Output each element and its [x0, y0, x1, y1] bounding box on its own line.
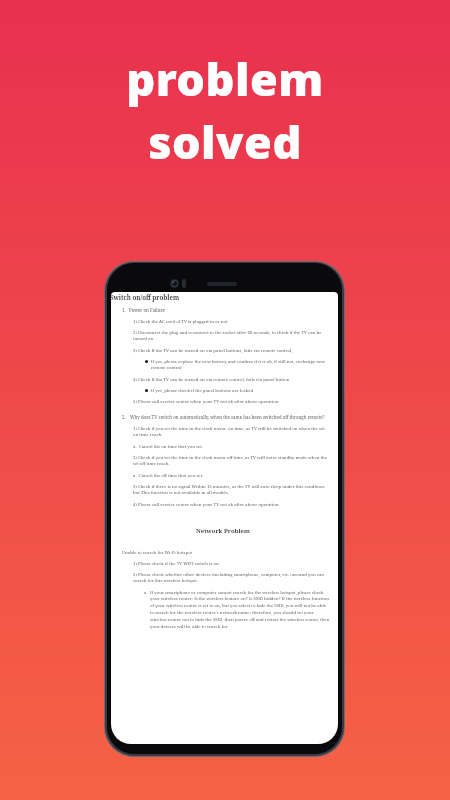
staticText: Unable to search for Wi-Fi hotspot: [122, 549, 193, 555]
staticText: If yes, please check if the panel button…: [151, 387, 254, 393]
staticText: 4) Check If the TV can be turned on via …: [133, 376, 290, 382]
staticText: If yes, please replace the new battery a…: [151, 358, 329, 371]
staticText: Cancel the on time that you set.: [139, 443, 203, 449]
staticText: a.: [133, 472, 139, 478]
staticText: 2) Check if you set the time in the cloc…: [133, 454, 331, 467]
staticText: Network Problem: [111, 527, 335, 535]
staticText: a.: [133, 443, 139, 449]
staticText: 1.: [122, 307, 129, 313]
staticText: Switch on/off problem: [111, 293, 180, 301]
staticText: Why does TV switch on automatically, whe…: [130, 414, 325, 420]
staticText: 1) Check the AC cord of TV is plugged in…: [133, 318, 228, 324]
staticText: Power on Failure: [129, 307, 165, 313]
staticText: 3) Check If the TV can be turned on via …: [133, 347, 293, 353]
staticText: problem: [126, 48, 324, 109]
staticText: 2) Please check whether other devices (i…: [133, 571, 331, 584]
staticText: 4) Please call service center when your …: [133, 501, 280, 507]
staticText: 2) Disconnect the plug and reconnect to …: [133, 329, 331, 342]
staticText: 5) Please call service center when your …: [133, 398, 280, 404]
staticText: solved: [148, 111, 302, 172]
staticText: If your smartphone or computer cannot se…: [150, 589, 331, 630]
staticText: 1) Check if you set the time in the cloc…: [133, 425, 331, 438]
button[interactable]: Phone preview: [104, 261, 345, 757]
staticText: 3) Check if there is no signal Within 15…: [133, 483, 331, 496]
staticText: a.: [144, 589, 150, 595]
staticText: Cancel the off time that you set.: [139, 472, 204, 478]
staticText: 2.: [122, 414, 130, 420]
staticText: 1) Please check if the TV WIFI switch is…: [133, 560, 220, 566]
